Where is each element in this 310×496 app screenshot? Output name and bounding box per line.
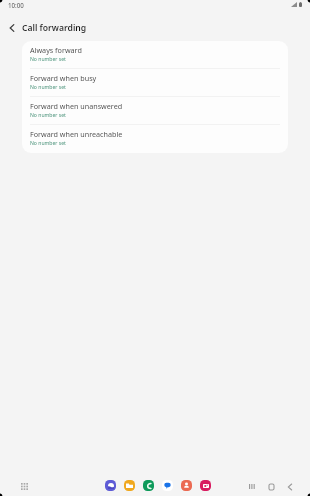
- button[interactable]: Forward when busy: [22, 69, 288, 97]
- button[interactable]: Messages: [162, 480, 173, 491]
- staticText: No number set: [30, 84, 66, 91]
- button[interactable]: Forward when unreachable: [22, 125, 288, 153]
- staticText: Forward when unreachable: [30, 129, 123, 139]
- staticText: 10:00: [8, 1, 24, 9]
- button[interactable]: Back: [281, 478, 298, 495]
- button[interactable]: Apps: [15, 477, 34, 496]
- button[interactable]: Home: [263, 478, 280, 495]
- button[interactable]: Always forward: [22, 41, 288, 69]
- button[interactable]: Contacts: [181, 480, 192, 491]
- staticText: No number set: [30, 112, 66, 119]
- button[interactable]: My Files: [124, 480, 135, 491]
- staticText: Forward when unanswered: [30, 101, 123, 111]
- button[interactable]: Forward when unanswered: [22, 97, 288, 125]
- staticText: Call forwarding: [22, 22, 87, 34]
- staticText: No number set: [30, 56, 66, 63]
- staticText: No number set: [30, 140, 66, 147]
- staticText: Forward when busy: [30, 73, 97, 83]
- button[interactable]: Phone: [143, 480, 154, 491]
- button[interactable]: Navigate up: [0, 17, 22, 39]
- button[interactable]: Gallery: [200, 480, 211, 491]
- staticText: Always forward: [30, 45, 82, 55]
- button[interactable]: Recent apps: [243, 478, 260, 495]
- button[interactable]: Internet: [105, 480, 116, 491]
